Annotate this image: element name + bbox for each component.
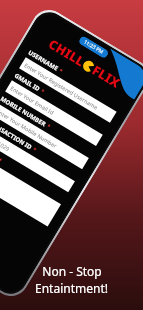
staticText: GMAIL ID [13, 72, 42, 93]
staticText: TRANSACTION ID [0, 118, 34, 152]
staticText: FLIX [89, 61, 124, 92]
staticText: 9008-51029 [0, 131, 12, 153]
button[interactable]: Type Here ... [0, 150, 61, 227]
button[interactable]: Enter Your Mobile Number [0, 103, 89, 169]
staticText: * [38, 87, 46, 96]
staticText: * [30, 145, 38, 154]
staticText: MOBILE NUMBER [0, 95, 48, 128]
button[interactable]: Enter Your Registered Username [19, 57, 117, 123]
staticText: USERNAME [27, 49, 60, 73]
staticText: * [0, 156, 4, 165]
staticText: Non - Stop [42, 263, 102, 279]
staticText: Entaintment! [35, 280, 108, 296]
staticText: Enter Your Mobile Number [0, 107, 59, 150]
staticText: * [56, 66, 64, 75]
staticText: * [44, 122, 52, 131]
button[interactable]: 9008-51029 [0, 127, 75, 192]
staticText: Enter Your Registered Username [23, 61, 100, 111]
staticText: Enter Your Email Id [9, 84, 56, 116]
staticText: 11:23 PM [82, 38, 105, 56]
staticText: CHILL [45, 35, 89, 71]
button[interactable]: Enter Your Email Id [5, 80, 103, 146]
